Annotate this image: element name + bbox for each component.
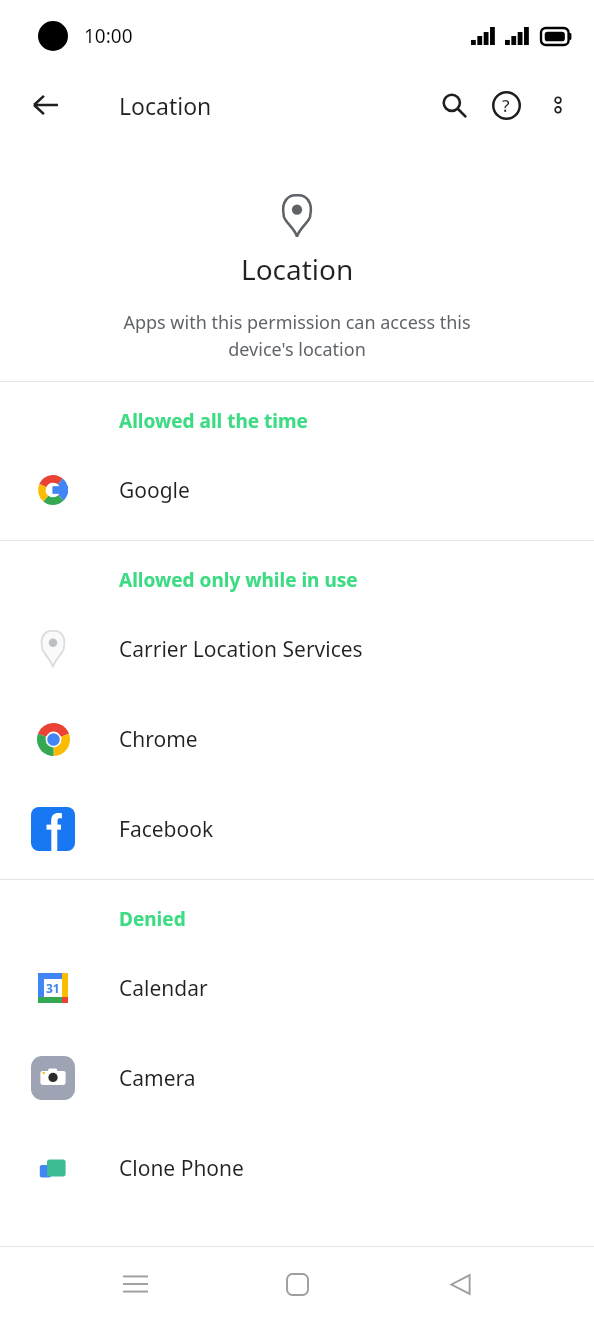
staticText: 31 (46, 980, 60, 996)
staticText: Google (119, 476, 190, 505)
button[interactable]: Facebook (0, 795, 594, 863)
staticText: Facebook (119, 815, 214, 844)
button[interactable]: Search (428, 79, 480, 131)
button[interactable]: Carrier Location Services (0, 615, 594, 683)
staticText: Location (241, 250, 354, 288)
staticText: ? (502, 94, 510, 117)
staticText: Allowed all the time (119, 408, 308, 434)
staticText: Allowed only while in use (119, 567, 358, 593)
button[interactable]: 31 (0, 954, 594, 1022)
button[interactable]: Back (20, 79, 72, 131)
staticText: Chrome (119, 725, 198, 754)
staticText: Carrier Location Services (119, 635, 363, 664)
staticText: 10:00 (84, 23, 133, 49)
button[interactable]: Help (480, 79, 532, 131)
button[interactable]: Home (269, 1256, 325, 1312)
button[interactable]: Google (0, 456, 594, 524)
button[interactable]: Recent apps (107, 1256, 163, 1312)
staticText: Clone Phone (119, 1154, 244, 1183)
staticText: Denied (119, 906, 186, 932)
staticText: Calendar (119, 974, 208, 1003)
staticText: Camera (119, 1064, 196, 1093)
staticText: Apps with this permission can access thi… (30, 310, 564, 361)
button[interactable]: More options (532, 79, 584, 131)
button[interactable]: Back (432, 1256, 488, 1312)
button[interactable]: Camera (0, 1044, 594, 1112)
staticText: Location (119, 90, 212, 121)
button[interactable]: Chrome (0, 705, 594, 773)
button[interactable]: Clone Phone (0, 1134, 594, 1202)
